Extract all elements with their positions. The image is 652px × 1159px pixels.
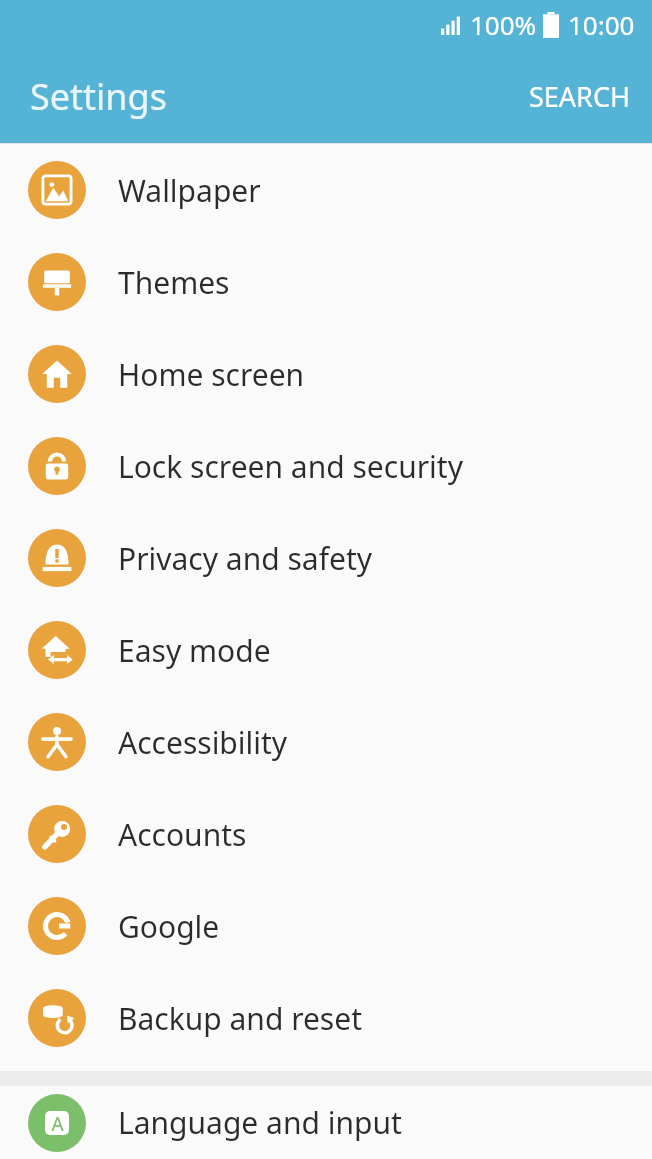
staticText: 10:00 — [568, 7, 635, 42]
staticText: Privacy and safety — [118, 538, 373, 579]
staticText: Accounts — [118, 814, 247, 855]
button[interactable]: Accounts — [0, 788, 652, 880]
button[interactable]: Themes — [0, 236, 652, 328]
staticText: Wallpaper — [118, 170, 261, 211]
staticText: A — [51, 1111, 64, 1135]
staticText: SEARCH — [529, 78, 630, 115]
staticText: Settings — [30, 72, 167, 121]
button[interactable]: A — [0, 1086, 652, 1159]
button[interactable]: Accessibility — [0, 696, 652, 788]
staticText: 100% — [470, 7, 537, 42]
button[interactable]: Google — [0, 880, 652, 972]
button[interactable]: Backup and reset — [0, 972, 652, 1064]
button[interactable]: Privacy and safety — [0, 512, 652, 604]
staticText: Home screen — [118, 354, 305, 395]
button[interactable]: Wallpaper — [0, 144, 652, 236]
button[interactable]: Lock screen and security — [0, 420, 652, 512]
staticText: Backup and reset — [118, 998, 362, 1039]
staticText: Themes — [118, 262, 230, 303]
staticText: Accessibility — [118, 722, 288, 763]
button[interactable]: SEARCH — [507, 62, 652, 131]
staticText: Lock screen and security — [118, 446, 463, 487]
button[interactable]: Home screen — [0, 328, 652, 420]
staticText: Google — [118, 906, 220, 947]
staticText: Language and input — [118, 1102, 402, 1143]
staticText: Easy mode — [118, 630, 271, 671]
button[interactable]: Easy mode — [0, 604, 652, 696]
